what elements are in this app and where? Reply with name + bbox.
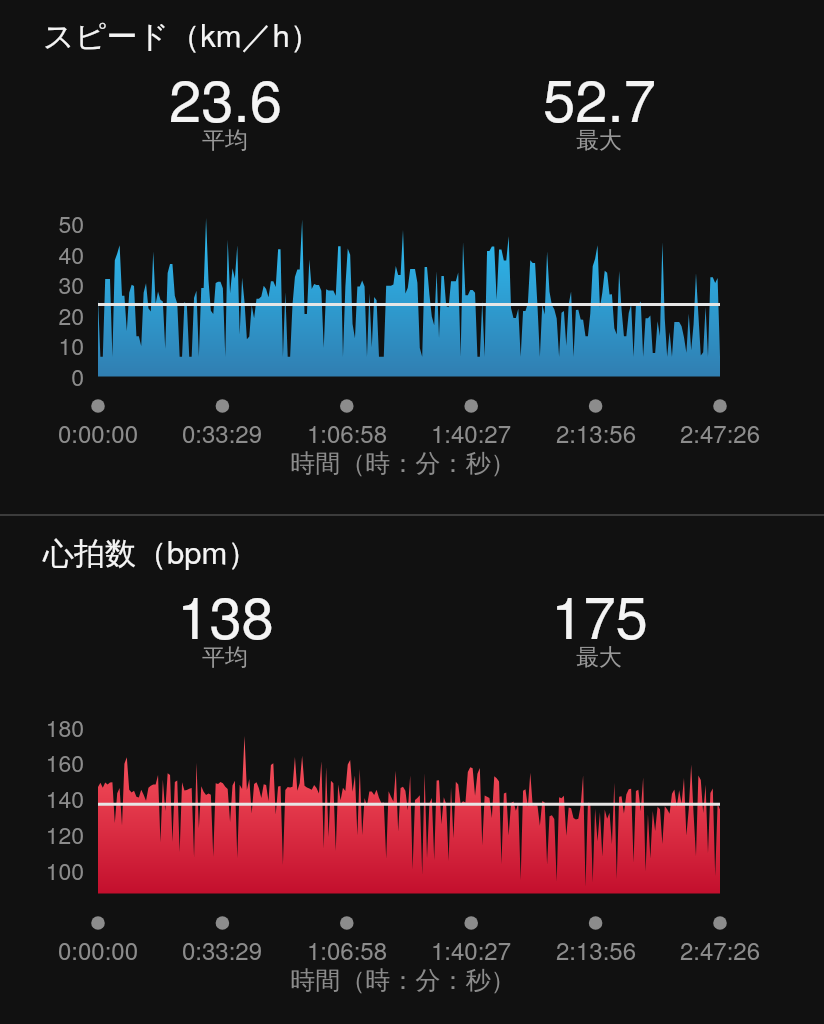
staticText: 52.7	[543, 55, 656, 138]
staticText: 0:33:29	[157, 415, 287, 449]
staticText: 180	[0, 711, 84, 744]
staticText: 平均	[202, 126, 248, 155]
staticText: 心拍数（bpm）	[43, 528, 259, 573]
staticText: 50	[0, 207, 84, 240]
staticText: 2:13:56	[531, 415, 661, 449]
staticText: 1:40:27	[406, 415, 536, 449]
staticText: 時間（時：分：秒）	[203, 448, 603, 479]
button[interactable]: スピード（km／h）	[43, 11, 321, 56]
staticText: 140	[0, 782, 84, 815]
staticText: 23.6	[169, 55, 282, 138]
staticText: 160	[0, 746, 84, 779]
staticText: 1:06:58	[282, 415, 412, 449]
staticText: 120	[0, 818, 84, 851]
staticText: 40	[0, 238, 84, 271]
button[interactable]: 心拍数（bpm）	[43, 528, 259, 573]
staticText: 10	[0, 329, 84, 362]
staticText: 0:00:00	[33, 932, 163, 966]
staticText: 2:13:56	[531, 932, 661, 966]
staticText: 0:33:29	[157, 932, 287, 966]
staticText: 138	[177, 572, 274, 655]
staticText: 175	[551, 572, 648, 655]
staticText: 1:40:27	[406, 932, 536, 966]
staticText: 2:47:26	[655, 932, 785, 966]
staticText: 平均	[202, 643, 248, 672]
staticText: 最大	[576, 643, 622, 672]
staticText: 30	[0, 268, 84, 301]
staticText: 1:06:58	[282, 932, 412, 966]
staticText: スピード（km／h）	[43, 11, 321, 56]
staticText: 0:00:00	[33, 415, 163, 449]
staticText: 20	[0, 299, 84, 332]
staticText: 最大	[576, 126, 622, 155]
staticText: 時間（時：分：秒）	[203, 965, 603, 996]
staticText: 100	[0, 854, 84, 887]
staticText: 2:47:26	[655, 415, 785, 449]
staticText: 0	[0, 360, 84, 393]
